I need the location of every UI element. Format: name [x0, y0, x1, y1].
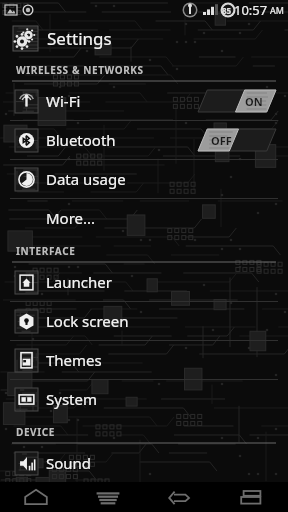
staticText: Themes [46, 350, 102, 370]
staticText: Launcher [46, 272, 112, 292]
button[interactable]: Data usage [0, 160, 288, 198]
staticText: Lock screen [46, 311, 129, 331]
staticText: System [46, 389, 97, 409]
staticText: AM [270, 4, 284, 16]
staticText: 85 [222, 5, 232, 16]
button[interactable]: Sound [0, 444, 288, 482]
button[interactable]: Toggle off [198, 129, 276, 151]
button[interactable]: Bluetooth [0, 121, 288, 159]
staticText: INTERFACE [16, 244, 76, 258]
staticText: OFF [211, 133, 232, 148]
button[interactable]: Settings [0, 20, 288, 56]
button[interactable]: Themes [0, 341, 288, 379]
button[interactable]: Recents [216, 482, 288, 512]
button[interactable]: Home [0, 482, 72, 512]
button[interactable]: Launcher [0, 263, 288, 301]
staticText: Sound [46, 453, 92, 473]
staticText: More... [46, 208, 96, 228]
staticText: Settings [47, 27, 112, 50]
staticText: DEVICE [16, 425, 55, 439]
staticText: 10:57 [234, 1, 268, 19]
staticText: Data usage [46, 169, 126, 189]
staticText: WIRELESS & NETWORKS [16, 63, 144, 77]
staticText: Wi-Fi [46, 91, 81, 111]
button[interactable]: Menu [72, 482, 144, 512]
button[interactable]: Wi-Fi [0, 82, 288, 120]
button[interactable]: Lock screen [0, 302, 288, 340]
staticText: Bluetooth [46, 130, 116, 150]
staticText: ON [245, 94, 263, 109]
button[interactable]: Toggle on [198, 90, 276, 112]
button[interactable]: System [0, 380, 288, 418]
button[interactable]: Back [144, 482, 216, 512]
button[interactable]: More... [0, 199, 288, 237]
